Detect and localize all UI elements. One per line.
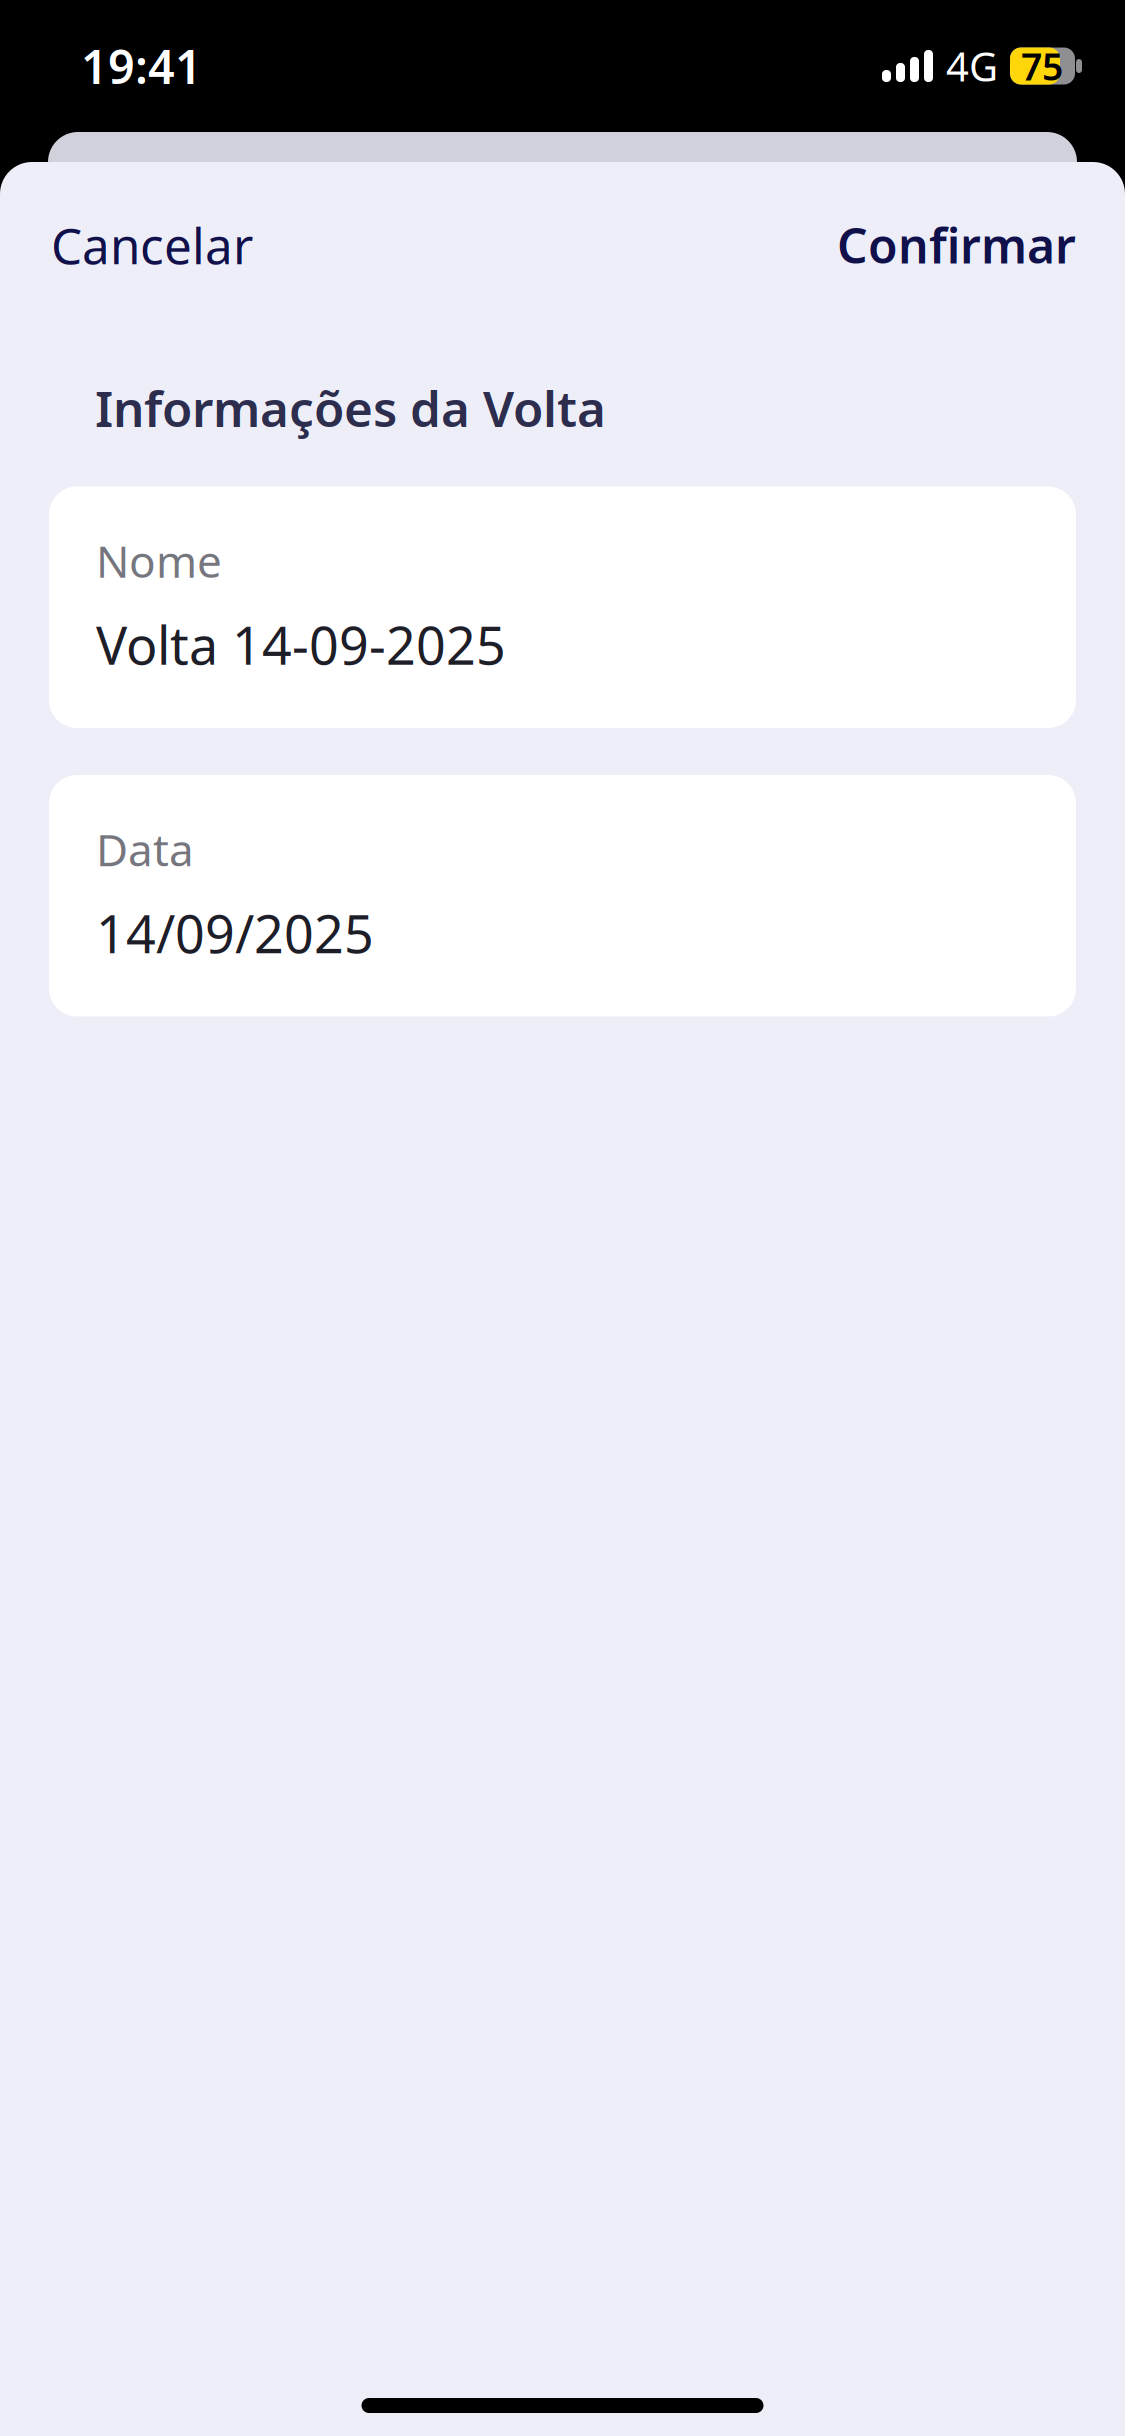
staticText: Cancelar bbox=[51, 212, 253, 278]
staticText: 75 bbox=[1021, 41, 1063, 91]
button[interactable]: Confirmar bbox=[813, 191, 1125, 299]
button[interactable]: Cancelar bbox=[0, 190, 277, 300]
staticText: Informações da Volta bbox=[95, 375, 606, 440]
staticText: 19:41 bbox=[81, 35, 202, 97]
staticText: Nome bbox=[96, 531, 222, 590]
button[interactable]: Nome bbox=[49, 486, 1076, 728]
staticText: Data bbox=[96, 820, 194, 878]
staticText: Confirmar bbox=[837, 213, 1076, 277]
staticText: 4G bbox=[946, 39, 998, 92]
staticText: Volta 14-09-2025 bbox=[96, 610, 506, 679]
button[interactable]: Data bbox=[49, 775, 1076, 1016]
staticText: 14/09/2025 bbox=[96, 898, 374, 967]
